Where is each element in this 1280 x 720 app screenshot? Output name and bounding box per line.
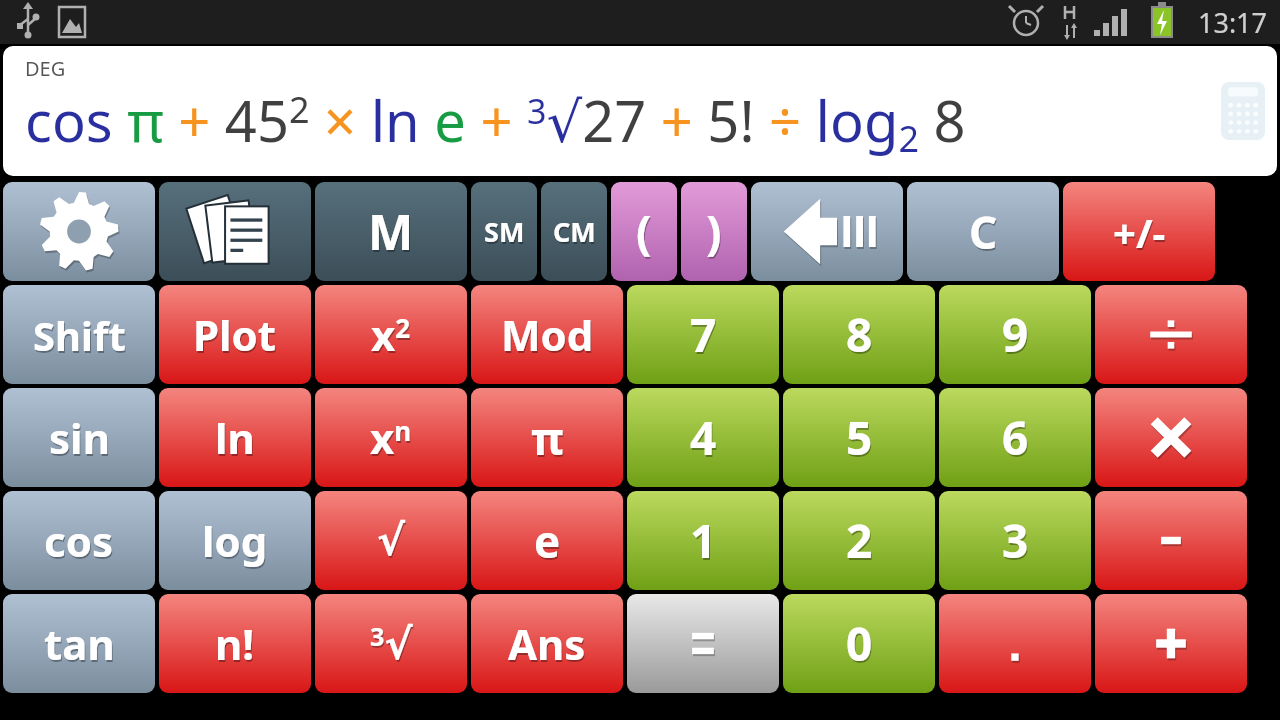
button[interactable]: C xyxy=(907,182,1059,281)
button[interactable]: Shift xyxy=(3,285,155,384)
button[interactable]: 3 xyxy=(939,491,1091,590)
button[interactable]: Divide xyxy=(1095,285,1247,384)
button[interactable]: 9 xyxy=(939,285,1091,384)
staticText: 8 xyxy=(846,303,873,366)
button[interactable]: DEG xyxy=(3,46,1277,176)
staticText: xn xyxy=(371,411,413,468)
button[interactable]: Ans xyxy=(471,594,623,693)
staticText: π xyxy=(531,408,564,468)
staticText: e xyxy=(535,513,562,573)
button[interactable]: Backspace xyxy=(751,182,903,281)
button[interactable]: 6 xyxy=(939,388,1091,487)
staticText: C xyxy=(970,204,999,264)
staticText: n! xyxy=(216,617,256,674)
button[interactable]: Multiply xyxy=(1095,388,1247,487)
staticText: 0 xyxy=(846,612,873,675)
staticText: 3√ xyxy=(370,619,413,669)
button[interactable]: CM xyxy=(541,182,607,281)
button[interactable]: ln xyxy=(159,388,311,487)
staticText: log xyxy=(202,512,268,569)
staticText: e xyxy=(534,511,561,571)
staticText: C xyxy=(969,202,998,262)
button[interactable]: 1 xyxy=(627,491,779,590)
staticText: Plot xyxy=(193,306,277,363)
button[interactable]: 7 xyxy=(627,285,779,384)
staticText: CM xyxy=(553,213,596,250)
staticText: 1 xyxy=(690,509,717,572)
button[interactable]: +/- xyxy=(1063,182,1215,281)
staticText: 13:17 xyxy=(1198,4,1268,41)
staticText: 9 xyxy=(1002,303,1029,366)
staticText: π xyxy=(532,410,565,470)
staticText: 7 xyxy=(691,305,718,368)
staticText: cos xyxy=(45,514,115,571)
staticText: 8 xyxy=(847,305,874,368)
staticText: sin xyxy=(50,411,111,468)
button[interactable]: cos xyxy=(3,491,155,590)
staticText: 3 xyxy=(1002,509,1029,572)
button[interactable]: e xyxy=(471,491,623,590)
staticText: 5 xyxy=(847,408,874,471)
button[interactable]: log xyxy=(159,491,311,590)
staticText: 1 xyxy=(691,511,718,574)
button[interactable]: SM xyxy=(471,182,537,281)
button[interactable]: n! xyxy=(159,594,311,693)
staticText: SM xyxy=(485,215,526,252)
button[interactable]: tan xyxy=(3,594,155,693)
staticText: 6 xyxy=(1003,408,1030,471)
button[interactable]: π xyxy=(471,388,623,487)
staticText: tan xyxy=(45,617,116,674)
staticText: x2 xyxy=(371,306,411,363)
button[interactable]: Minus xyxy=(1095,491,1247,590)
staticText: 0 xyxy=(847,614,874,677)
staticText: 2 xyxy=(847,511,874,574)
button[interactable]: Plot xyxy=(159,285,311,384)
staticText: 9 xyxy=(1003,305,1030,368)
button[interactable]: Settings xyxy=(3,182,155,281)
staticText: ) xyxy=(707,202,723,265)
button[interactable]: 2 xyxy=(783,491,935,590)
staticText: 4 xyxy=(691,408,718,471)
staticText: 3 xyxy=(1003,511,1030,574)
staticText: log xyxy=(203,514,269,571)
staticText: CM xyxy=(554,215,597,252)
button[interactable]: Mod xyxy=(471,285,623,384)
staticText: 7 xyxy=(690,303,717,366)
button[interactable]: History xyxy=(159,182,311,281)
button[interactable]: xn xyxy=(315,388,467,487)
staticText: 6 xyxy=(1002,406,1029,469)
button[interactable]: sin xyxy=(3,388,155,487)
staticText: Mod xyxy=(501,306,594,363)
staticText: √ xyxy=(378,518,407,567)
staticText: √ xyxy=(377,516,406,565)
staticText: ( xyxy=(637,202,653,265)
staticText: Ans xyxy=(508,615,586,672)
staticText: M xyxy=(369,201,415,266)
staticText: +/- xyxy=(1113,205,1166,259)
button[interactable]: Decimal point xyxy=(939,594,1091,693)
staticText: DEG xyxy=(25,55,66,82)
button[interactable]: ) xyxy=(681,182,747,281)
button[interactable]: 3√ xyxy=(315,594,467,693)
button[interactable]: 0 xyxy=(783,594,935,693)
button[interactable]: Plus xyxy=(1095,594,1247,693)
button[interactable]: √ xyxy=(315,491,467,590)
staticText: Shift xyxy=(33,308,126,362)
button[interactable]: 5 xyxy=(783,388,935,487)
staticText: Shift xyxy=(34,310,127,364)
staticText: +/- xyxy=(1114,207,1167,261)
staticText: Plot xyxy=(194,308,278,365)
button[interactable]: 4 xyxy=(627,388,779,487)
button[interactable]: Equals xyxy=(627,594,779,693)
staticText: cos xyxy=(44,512,114,569)
staticText: 3√ xyxy=(371,621,414,671)
button[interactable]: 8 xyxy=(783,285,935,384)
staticText: ( xyxy=(636,200,652,263)
staticText: x2 xyxy=(372,308,412,365)
staticText: ln xyxy=(215,409,255,466)
staticText: 2 xyxy=(846,509,873,572)
button[interactable]: ( xyxy=(611,182,677,281)
button[interactable]: M xyxy=(315,182,467,281)
button[interactable]: x2 xyxy=(315,285,467,384)
staticText: 4 xyxy=(690,406,717,469)
